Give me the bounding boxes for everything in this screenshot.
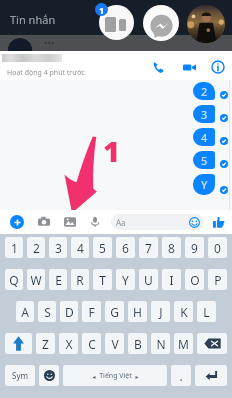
staticText: P — [214, 272, 222, 288]
button[interactable]: Recent apps — [99, 5, 134, 40]
button[interactable]: I — [162, 269, 181, 290]
button[interactable]: Video call — [179, 57, 199, 77]
staticText: ▸ — [135, 373, 139, 380]
button[interactable]: W — [27, 269, 45, 290]
staticText: X — [65, 336, 73, 352]
button[interactable]: Z — [36, 333, 55, 354]
button[interactable] — [39, 365, 59, 386]
staticText: 5 — [201, 153, 208, 168]
staticText: 1 — [103, 131, 120, 170]
button[interactable]: Info — [208, 57, 228, 77]
button[interactable]: T — [93, 269, 112, 290]
button[interactable]: M — [174, 333, 193, 354]
staticText: G — [110, 304, 119, 320]
button[interactable]: P — [208, 269, 227, 290]
button[interactable]: 4 — [193, 128, 215, 146]
button[interactable]: 5 — [193, 151, 215, 169]
staticText: 3 — [55, 240, 62, 256]
staticText: U — [144, 272, 153, 288]
button[interactable]: Y — [193, 174, 215, 195]
staticText: W — [30, 272, 42, 288]
staticText: 1 — [102, 131, 119, 170]
staticText: Q — [9, 272, 19, 288]
button[interactable]: X — [59, 333, 78, 354]
button[interactable]: A — [16, 301, 34, 322]
staticText: S — [44, 304, 51, 320]
staticText: 3 — [201, 107, 208, 122]
button[interactable]: 4 — [71, 237, 89, 258]
button[interactable]: O — [185, 269, 204, 290]
staticText: O — [190, 272, 200, 288]
staticText: J — [159, 304, 163, 320]
button[interactable]: . — [171, 365, 191, 386]
staticText: 1 — [99, 4, 105, 16]
button[interactable]: 2 — [193, 82, 215, 100]
button[interactable]: Camera — [36, 214, 51, 229]
button[interactable]: Sym — [5, 365, 35, 386]
button[interactable]: Q — [5, 269, 23, 290]
button[interactable]: ◂ — [63, 365, 167, 386]
button[interactable]: J — [151, 301, 170, 322]
button[interactable] — [5, 333, 32, 354]
staticText: 1 — [11, 240, 18, 256]
button[interactable]: Gallery — [62, 214, 77, 229]
button[interactable]: Profile — [187, 5, 225, 43]
staticText: M — [178, 336, 189, 352]
button[interactable] — [197, 333, 227, 354]
button[interactable]: 0 — [208, 237, 227, 258]
button[interactable]: C — [82, 333, 101, 354]
button[interactable]: Messenger — [143, 5, 179, 41]
staticText: K — [180, 304, 188, 320]
button[interactable]: 8 — [162, 237, 181, 258]
staticText: H — [133, 304, 142, 320]
button[interactable]: 5 — [93, 237, 112, 258]
staticText: T — [99, 272, 106, 288]
button[interactable]: 1 — [5, 237, 23, 258]
staticText: I — [169, 272, 174, 288]
button[interactable]: More actions — [10, 215, 24, 229]
staticText: Sym — [12, 370, 28, 381]
button[interactable]: Aa — [111, 214, 204, 230]
staticText: 7 — [145, 240, 152, 256]
button[interactable]: U — [139, 269, 158, 290]
button[interactable]: K — [174, 301, 193, 322]
button[interactable] — [195, 365, 227, 386]
button[interactable]: S — [38, 301, 56, 322]
button[interactable]: H — [128, 301, 147, 322]
button[interactable]: Voice call — [148, 57, 168, 77]
staticText: ••• — [44, 36, 55, 48]
button[interactable]: Like — [211, 214, 226, 229]
staticText: Hoạt động 4 phút trước — [7, 68, 85, 78]
staticText: A — [21, 304, 29, 320]
staticText: . — [179, 368, 183, 384]
button[interactable]: 7 — [139, 237, 158, 258]
staticText: D — [65, 304, 74, 320]
staticText: Aa — [116, 217, 126, 228]
button[interactable]: 6 — [116, 237, 135, 258]
button[interactable]: L — [197, 301, 216, 322]
button[interactable]: Voice message — [87, 214, 102, 229]
staticText: Z — [42, 336, 49, 352]
button[interactable]: V — [105, 333, 124, 354]
button[interactable]: G — [105, 301, 124, 322]
button[interactable]: B — [128, 333, 147, 354]
button[interactable]: N — [151, 333, 170, 354]
staticText: Tin nhắn — [10, 12, 56, 27]
staticText: F — [88, 304, 95, 320]
staticText: 4 — [77, 240, 84, 256]
button[interactable]: Y — [116, 269, 135, 290]
button[interactable]: 3 — [193, 105, 215, 123]
button[interactable]: D — [60, 301, 78, 322]
staticText: Y — [122, 272, 129, 288]
button[interactable]: E — [49, 269, 67, 290]
button[interactable]: 2 — [27, 237, 45, 258]
staticText: Tiếng Việt — [99, 371, 132, 381]
button[interactable]: R — [71, 269, 89, 290]
staticText: 5 — [99, 240, 106, 256]
staticText: E — [55, 272, 62, 288]
staticText: 0 — [214, 240, 221, 256]
staticText: ◂ — [92, 373, 96, 380]
button[interactable]: F — [82, 301, 101, 322]
button[interactable]: 9 — [185, 237, 204, 258]
button[interactable]: 3 — [49, 237, 67, 258]
